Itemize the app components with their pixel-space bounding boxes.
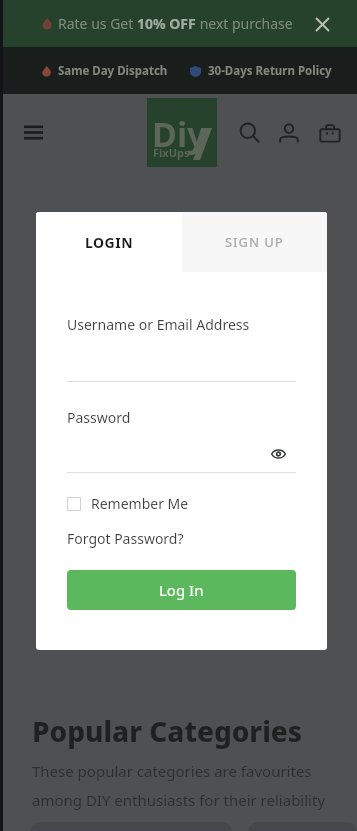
staticText: Username or Email Address xyxy=(67,315,250,334)
button[interactable]: LOGIN xyxy=(36,212,182,272)
button[interactable]: Diy xyxy=(147,98,217,167)
staticText: 10% OFF xyxy=(137,14,196,33)
staticText: Popular Categories xyxy=(32,712,303,750)
button[interactable]: Log In xyxy=(67,570,296,610)
staticText: Rate us Get xyxy=(58,14,137,33)
staticText: Log In xyxy=(159,580,204,600)
staticText: SIGN UP xyxy=(225,233,284,251)
staticText: FixUps xyxy=(153,145,190,160)
staticText: Diy xyxy=(152,111,207,157)
button[interactable]: Forgot Password? xyxy=(67,529,184,548)
staticText: LOGIN xyxy=(85,233,134,252)
staticText: Password xyxy=(67,408,131,427)
button[interactable]: Account xyxy=(274,118,304,148)
button[interactable]: Close banner xyxy=(309,11,335,37)
staticText: Same Day Dispatch xyxy=(58,63,168,79)
staticText: Remember Me xyxy=(91,494,189,513)
button[interactable]: Cart xyxy=(315,118,345,148)
button[interactable]: Search xyxy=(235,118,265,148)
button[interactable]: Menu xyxy=(18,117,48,147)
button[interactable]: Show password xyxy=(267,443,289,465)
staticText: 30-Days Return Policy xyxy=(208,63,332,79)
button[interactable]: SIGN UP xyxy=(182,212,327,272)
staticText: next purchase xyxy=(196,14,293,33)
button[interactable]: Remember Me xyxy=(67,494,189,513)
staticText: These popular categories are favourites … xyxy=(32,761,335,810)
